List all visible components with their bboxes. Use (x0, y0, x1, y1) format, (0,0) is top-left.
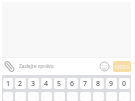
button[interactable] (28, 92, 39, 101)
button[interactable] (106, 92, 117, 101)
button[interactable]: 3 (28, 78, 39, 89)
button[interactable] (93, 92, 104, 101)
button[interactable]: Insert emoji (98, 60, 111, 73)
button[interactable]: 8 (93, 78, 104, 89)
button[interactable] (119, 92, 130, 101)
staticText: 1 (6, 79, 11, 89)
button[interactable] (67, 92, 78, 101)
button[interactable]: 6 (67, 78, 78, 89)
staticText: 3 (31, 79, 36, 89)
button[interactable] (41, 92, 52, 101)
staticText: 2 (18, 79, 23, 89)
staticText: 6 (70, 79, 75, 89)
button[interactable]: 0 (119, 78, 130, 89)
button[interactable]: 9 (106, 78, 117, 89)
button[interactable]: 2 (15, 78, 26, 89)
button[interactable] (15, 92, 26, 101)
staticText: 9 (109, 79, 114, 89)
button[interactable]: 1 (3, 78, 13, 89)
button[interactable]: ODES (113, 61, 131, 72)
staticText: 0 (122, 79, 127, 89)
button[interactable]: Attach file (3, 60, 16, 73)
button[interactable] (80, 92, 91, 101)
staticText: 8 (96, 79, 101, 89)
staticText: 4 (44, 79, 49, 89)
button[interactable]: 5 (54, 78, 65, 89)
staticText: ODES (115, 63, 130, 70)
staticText: 5 (57, 79, 62, 89)
button[interactable] (3, 92, 13, 101)
button[interactable] (54, 92, 65, 101)
button[interactable]: 4 (41, 78, 52, 89)
staticText: Zadejte zprávu (19, 63, 54, 70)
staticText: 7 (83, 79, 88, 89)
button[interactable]: 7 (80, 78, 91, 89)
